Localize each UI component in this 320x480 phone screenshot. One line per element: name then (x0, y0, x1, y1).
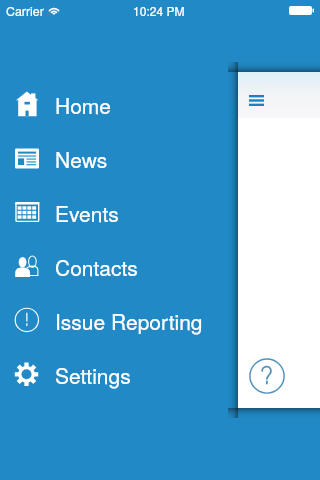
button[interactable]: Settings (0, 347, 238, 401)
button[interactable]: Open navigation menu (245, 89, 264, 108)
button[interactable]: News (0, 131, 238, 185)
staticText: Settings (55, 360, 131, 390)
staticText: Issue Reporting (55, 306, 203, 336)
staticText: Contacts (55, 252, 138, 282)
staticText: News (55, 144, 108, 174)
staticText: 10:24 PM (133, 2, 185, 19)
button[interactable]: Events (0, 185, 238, 239)
button[interactable]: Issue Reporting (0, 293, 238, 347)
staticText: Events (55, 198, 119, 228)
button[interactable]: Home (0, 77, 238, 131)
button[interactable]: Help (249, 358, 285, 394)
button[interactable]: Contacts (0, 239, 238, 293)
staticText: Carrier (6, 2, 44, 20)
staticText: Home (55, 90, 112, 120)
